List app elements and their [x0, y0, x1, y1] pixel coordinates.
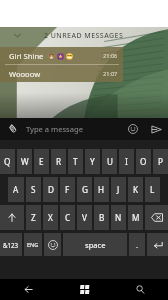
button[interactable]: Girl Shine [0, 47, 123, 65]
staticText: C [65, 212, 71, 223]
staticText: 21:06 [103, 52, 118, 60]
button[interactable]: Y [85, 149, 100, 174]
button[interactable]: U [102, 149, 117, 174]
staticText: 21:07 [103, 70, 118, 78]
button[interactable]: D [43, 177, 58, 202]
staticText: R [56, 156, 62, 167]
button[interactable]: Emoji [122, 118, 144, 140]
button[interactable]: O [136, 149, 151, 174]
button[interactable]: Start [56, 279, 112, 300]
button[interactable]: J [111, 177, 126, 202]
staticText: V [82, 212, 87, 223]
staticText: X [48, 212, 53, 223]
staticText: space [85, 240, 106, 250]
staticText: . [136, 240, 139, 250]
staticText: 2 UNREAD MESSAGES [44, 31, 124, 41]
button[interactable]: Attach [0, 118, 26, 140]
staticText: U [107, 156, 113, 167]
staticText: S [31, 184, 36, 195]
button[interactable]: S [26, 177, 41, 202]
button[interactable]: Emoji [44, 233, 61, 256]
staticText: F [65, 184, 70, 195]
button[interactable]: Q [0, 149, 15, 174]
button[interactable]: A [8, 177, 24, 202]
button[interactable]: Type a message [26, 118, 122, 140]
button[interactable]: V [77, 205, 92, 230]
button[interactable]: T [68, 149, 83, 174]
button[interactable]: . [129, 233, 145, 256]
button[interactable]: &123 [0, 233, 22, 256]
button[interactable]: R [51, 149, 66, 174]
staticText: B [99, 212, 105, 223]
staticText: W [21, 156, 29, 167]
staticText: K [133, 184, 139, 195]
button[interactable]: B [94, 205, 109, 230]
button[interactable]: Enter [147, 233, 168, 256]
button[interactable]: Woooow [0, 65, 123, 82]
button[interactable]: Shift [0, 205, 24, 230]
button[interactable]: N [111, 205, 126, 230]
button[interactable]: F [60, 177, 75, 202]
staticText: Type a message [26, 124, 83, 134]
staticText: T [73, 156, 78, 167]
staticText: P [158, 156, 163, 167]
button[interactable]: C [60, 205, 75, 230]
staticText: E [39, 156, 44, 167]
staticText: A [13, 184, 19, 195]
staticText: J [117, 184, 120, 195]
button[interactable]: ENG [24, 233, 42, 256]
staticText: M [132, 212, 140, 223]
button[interactable]: G [77, 177, 92, 202]
staticText: Y [90, 156, 95, 167]
button[interactable]: 2 UNREAD MESSAGES [0, 27, 168, 44]
button[interactable]: L [145, 177, 160, 202]
button[interactable]: Backspace [145, 205, 168, 230]
button[interactable]: P [153, 149, 168, 174]
button[interactable]: H [94, 177, 109, 202]
staticText: N [115, 212, 122, 223]
staticText: Q [4, 156, 11, 167]
button[interactable]: Back [0, 279, 56, 300]
staticText: L [150, 184, 155, 195]
button[interactable]: W [17, 149, 32, 174]
button[interactable]: K [128, 177, 143, 202]
button[interactable]: Search [112, 279, 168, 300]
staticText: Z [31, 212, 36, 223]
staticText: I [125, 156, 128, 167]
button[interactable]: E [34, 149, 49, 174]
staticText: Woooow [9, 69, 41, 79]
staticText: ENG [27, 241, 39, 249]
button[interactable]: Send [144, 118, 168, 140]
button[interactable]: Z [26, 205, 41, 230]
button[interactable]: M [128, 205, 143, 230]
button[interactable]: I [119, 149, 134, 174]
staticText: H [98, 184, 105, 195]
staticText: O [140, 156, 147, 167]
staticText: Girl Shine [9, 51, 44, 61]
staticText: D [48, 184, 54, 195]
button[interactable]: space [63, 233, 127, 256]
staticText: &123 [3, 241, 19, 249]
staticText: G [82, 184, 88, 195]
button[interactable]: X [43, 205, 58, 230]
